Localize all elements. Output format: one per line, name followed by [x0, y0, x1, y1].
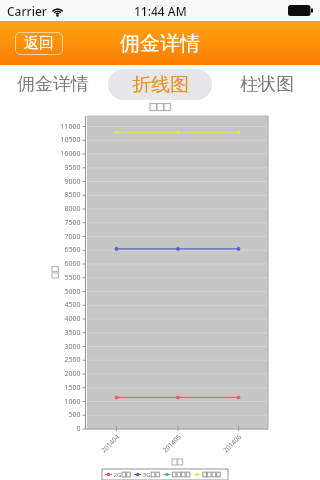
staticText: 佣金详情	[120, 31, 200, 56]
staticText: 佣金详情	[17, 73, 89, 96]
staticText: 11:44 AM	[134, 3, 187, 19]
staticText: 柱状图	[240, 73, 294, 96]
staticText: Carrier	[7, 3, 47, 19]
staticText: 折线图	[132, 73, 189, 97]
staticText: 返回	[24, 34, 54, 53]
button[interactable]: 柱状图	[213, 65, 320, 103]
button[interactable]: 返回	[15, 32, 63, 55]
button[interactable]: 折线图	[106, 65, 213, 103]
button[interactable]: 佣金详情	[0, 65, 106, 103]
